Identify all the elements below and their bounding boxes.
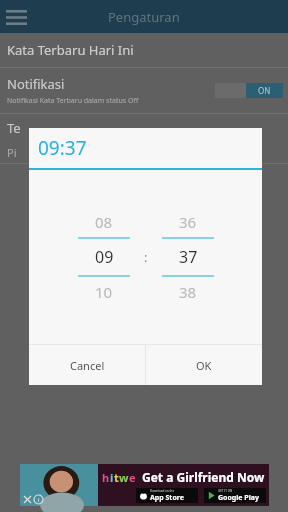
staticText: Te — [7, 119, 21, 137]
button[interactable]: 09 — [74, 239, 134, 275]
button[interactable]: Menu — [1, 2, 31, 32]
staticText: App Store — [150, 493, 184, 503]
staticText: Notifikasi — [7, 75, 65, 93]
button[interactable]: 38 — [158, 277, 218, 307]
staticText: e — [129, 470, 136, 485]
staticText: GET IT ON — [218, 489, 233, 493]
staticText: 09 — [95, 246, 114, 268]
button[interactable]: Google Play — [207, 488, 263, 503]
staticText: Get a Girlfriend Now — [142, 469, 265, 485]
staticText: 09:37 — [38, 135, 87, 161]
button[interactable]: Notifikasi — [0, 68, 288, 113]
button[interactable]: 37 — [158, 239, 218, 275]
staticText: 36 — [179, 212, 197, 232]
staticText: 10 — [95, 282, 113, 302]
staticText: Notifikasi Kata Terbaru dalam status Off — [7, 96, 139, 106]
staticText: ON — [258, 85, 271, 96]
staticText: : — [144, 248, 148, 266]
staticText: t — [114, 470, 119, 485]
staticText: Download on the — [150, 489, 175, 493]
button[interactable]: Notification toggle — [215, 83, 283, 98]
button[interactable]: Cancel — [29, 345, 145, 385]
button[interactable]: Te — [0, 114, 288, 141]
button[interactable]: Advertisement — [20, 464, 269, 506]
staticText: 37 — [179, 246, 198, 268]
button[interactable]: OK — [146, 345, 262, 385]
button[interactable]: 10 — [74, 277, 134, 307]
staticText: Pi — [7, 145, 17, 160]
staticText: 08 — [95, 212, 113, 232]
button[interactable]: 08 — [74, 207, 134, 237]
button[interactable]: App Store — [139, 488, 195, 503]
staticText: Pengaturan — [108, 8, 180, 26]
button[interactable]: Pi — [0, 141, 288, 163]
staticText: i — [38, 496, 40, 504]
staticText: Google Play — [218, 493, 259, 503]
staticText: Cancel — [70, 358, 105, 373]
staticText: w — [119, 470, 129, 485]
staticText: Kata Terbaru Hari Ini — [7, 41, 134, 59]
staticText: OK — [196, 358, 212, 373]
staticText: i — [110, 470, 114, 485]
staticText: 38 — [179, 282, 197, 302]
button[interactable]: 36 — [158, 207, 218, 237]
staticText: h — [102, 470, 110, 485]
